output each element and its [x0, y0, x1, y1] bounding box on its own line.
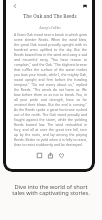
- button[interactable]: Rotate: [36, 152, 43, 159]
- staticText: Dive into the world of short tales with …: [9, 183, 93, 197]
- button[interactable]: Share: [47, 152, 54, 159]
- staticText: The Oak and The Reeds: [12, 13, 88, 20]
- staticText: Aesop's Fables: [12, 26, 88, 30]
- button[interactable]: Favorite: [58, 152, 65, 159]
- button[interactable]: Bookmark: [82, 3, 88, 9]
- staticText: A Giant Oak stood near a brook in which …: [14, 32, 87, 147]
- button[interactable]: Back: [12, 3, 18, 9]
